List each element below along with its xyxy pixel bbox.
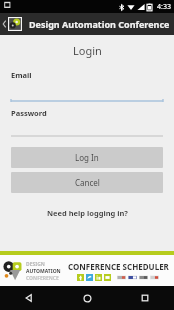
staticText: Password: [11, 108, 47, 118]
button[interactable]: Need help logging in?: [0, 208, 174, 218]
staticText: Email: [11, 70, 32, 80]
staticText: Need help logging in?: [47, 208, 128, 218]
button[interactable]: [11, 93, 163, 102]
button[interactable]: [11, 131, 163, 137]
staticText: DESIGN: [26, 261, 45, 268]
button[interactable]: YouTube: [104, 274, 111, 281]
button[interactable]: Cancel: [11, 172, 163, 193]
staticText: CONFERENCE SCHEDULER: [68, 261, 169, 272]
button[interactable]: Log In: [11, 147, 163, 168]
button[interactable]: Conference Scheduler banner: [0, 255, 174, 286]
button[interactable]: Facebook: [77, 274, 84, 281]
staticText: Design Automation Conference: [29, 18, 170, 30]
button[interactable]: Back: [0, 286, 58, 310]
button[interactable]: LinkedIn: [95, 274, 102, 281]
button[interactable]: Twitter: [86, 274, 93, 281]
button[interactable]: Navigate up: [0, 13, 24, 35]
staticText: 4:33: [157, 2, 171, 12]
button[interactable]: Home: [58, 286, 116, 310]
staticText: AUTOMATION: [26, 268, 61, 275]
staticText: Cancel: [75, 177, 100, 188]
button[interactable]: Recent apps: [116, 286, 174, 310]
staticText: Log In: [75, 152, 99, 163]
staticText: Login: [73, 43, 102, 58]
staticText: CONFERENCE: [26, 275, 59, 282]
